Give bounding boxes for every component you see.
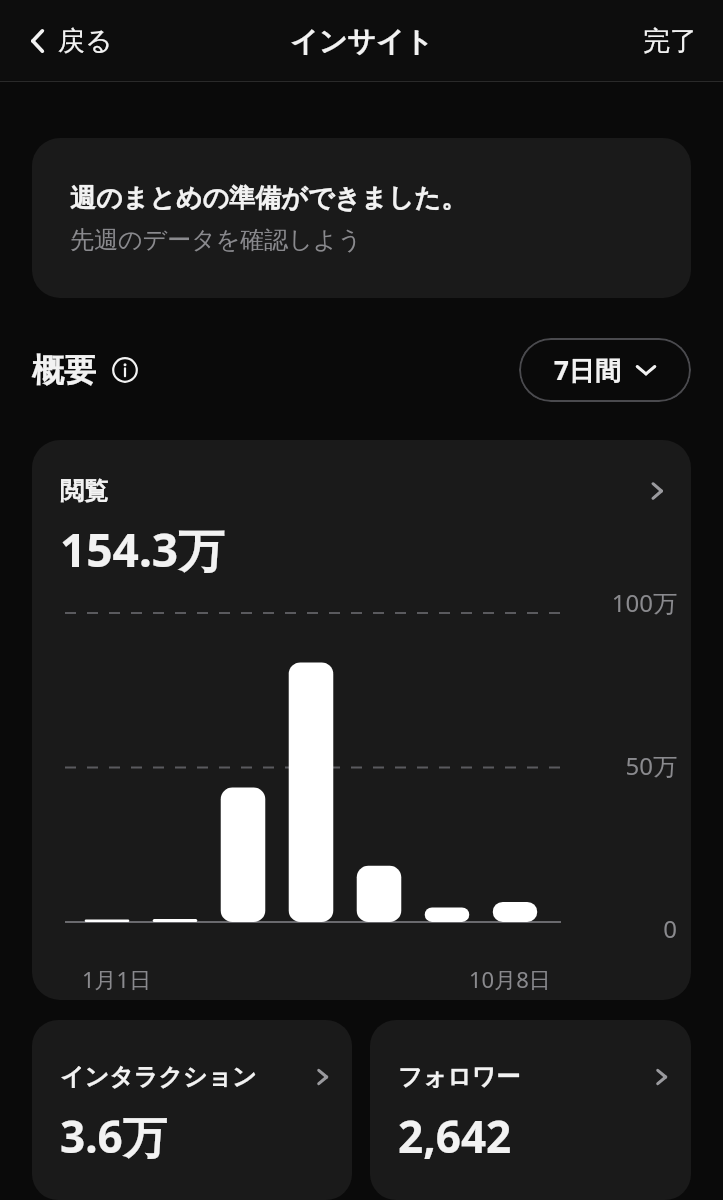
- staticText: 7日間: [554, 352, 621, 388]
- button[interactable]: 週のまとめの準備ができました。: [32, 138, 691, 298]
- button[interactable]: 7日間: [519, 338, 691, 402]
- button[interactable]: 閲覧: [32, 440, 691, 1000]
- staticText: 2,642: [398, 1106, 512, 1166]
- staticText: フォロワー: [398, 1062, 521, 1092]
- staticText: 閲覧: [60, 476, 108, 506]
- staticText: 先週のデータを確認しよう: [70, 225, 362, 255]
- staticText: 概要: [32, 350, 96, 390]
- staticText: 3.6万: [60, 1106, 167, 1166]
- button[interactable]: 完了: [637, 18, 703, 64]
- button[interactable]: 詳細情報: [108, 353, 142, 387]
- staticText: 完了: [643, 24, 697, 58]
- button[interactable]: フォロワー: [370, 1020, 691, 1200]
- staticText: 154.3万: [60, 518, 225, 581]
- staticText: 10月8日: [469, 964, 551, 994]
- staticText: インタラクション: [60, 1062, 257, 1092]
- staticText: 1月1日: [82, 964, 152, 994]
- staticText: 100万: [611, 586, 677, 616]
- staticText: 50万: [625, 749, 677, 779]
- staticText: インサイト: [290, 24, 434, 59]
- staticText: 0: [663, 912, 677, 942]
- staticText: 週のまとめの準備ができました。: [70, 182, 467, 215]
- button[interactable]: 戻る: [22, 18, 119, 64]
- staticText: 戻る: [58, 24, 113, 58]
- button[interactable]: インタラクション: [32, 1020, 352, 1200]
